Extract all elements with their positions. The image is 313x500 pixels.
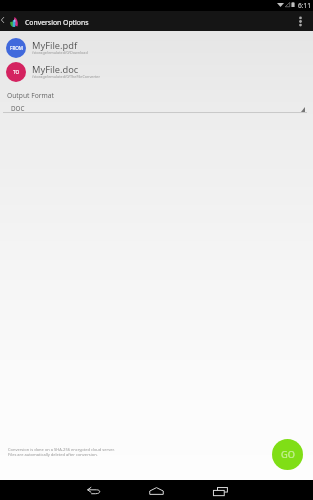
staticText: TO <box>13 69 20 75</box>
staticText: GO <box>281 448 295 461</box>
button[interactable]: Output Format <box>0 90 313 115</box>
button[interactable]: Navigate up <box>0 11 8 31</box>
staticText: 6:11 <box>298 1 312 10</box>
staticText: MyFile.pdf <box>32 39 78 52</box>
button[interactable]: Home <box>145 480 169 500</box>
staticText: Conversion is done on a SHA-256 encrypte… <box>8 447 115 452</box>
button[interactable]: GO <box>272 439 303 470</box>
staticText: MyFile.doc <box>32 63 79 76</box>
button[interactable]: More options <box>292 11 310 31</box>
button[interactable]: TO <box>0 60 313 84</box>
staticText: DOC <box>11 104 25 113</box>
staticText: /storage/emulated/0/Download <box>32 50 88 55</box>
button[interactable]: Recent apps <box>208 480 232 500</box>
button[interactable]: Back <box>82 480 105 500</box>
button[interactable]: FROM <box>0 36 313 60</box>
staticText: Output Format <box>7 91 54 100</box>
staticText: /storage/emulated/0/TheFileConverter <box>32 74 100 79</box>
staticText: FROM <box>10 45 23 51</box>
staticText: Files are automatically deleted after co… <box>8 452 98 457</box>
staticText: Conversion Options <box>25 18 89 27</box>
